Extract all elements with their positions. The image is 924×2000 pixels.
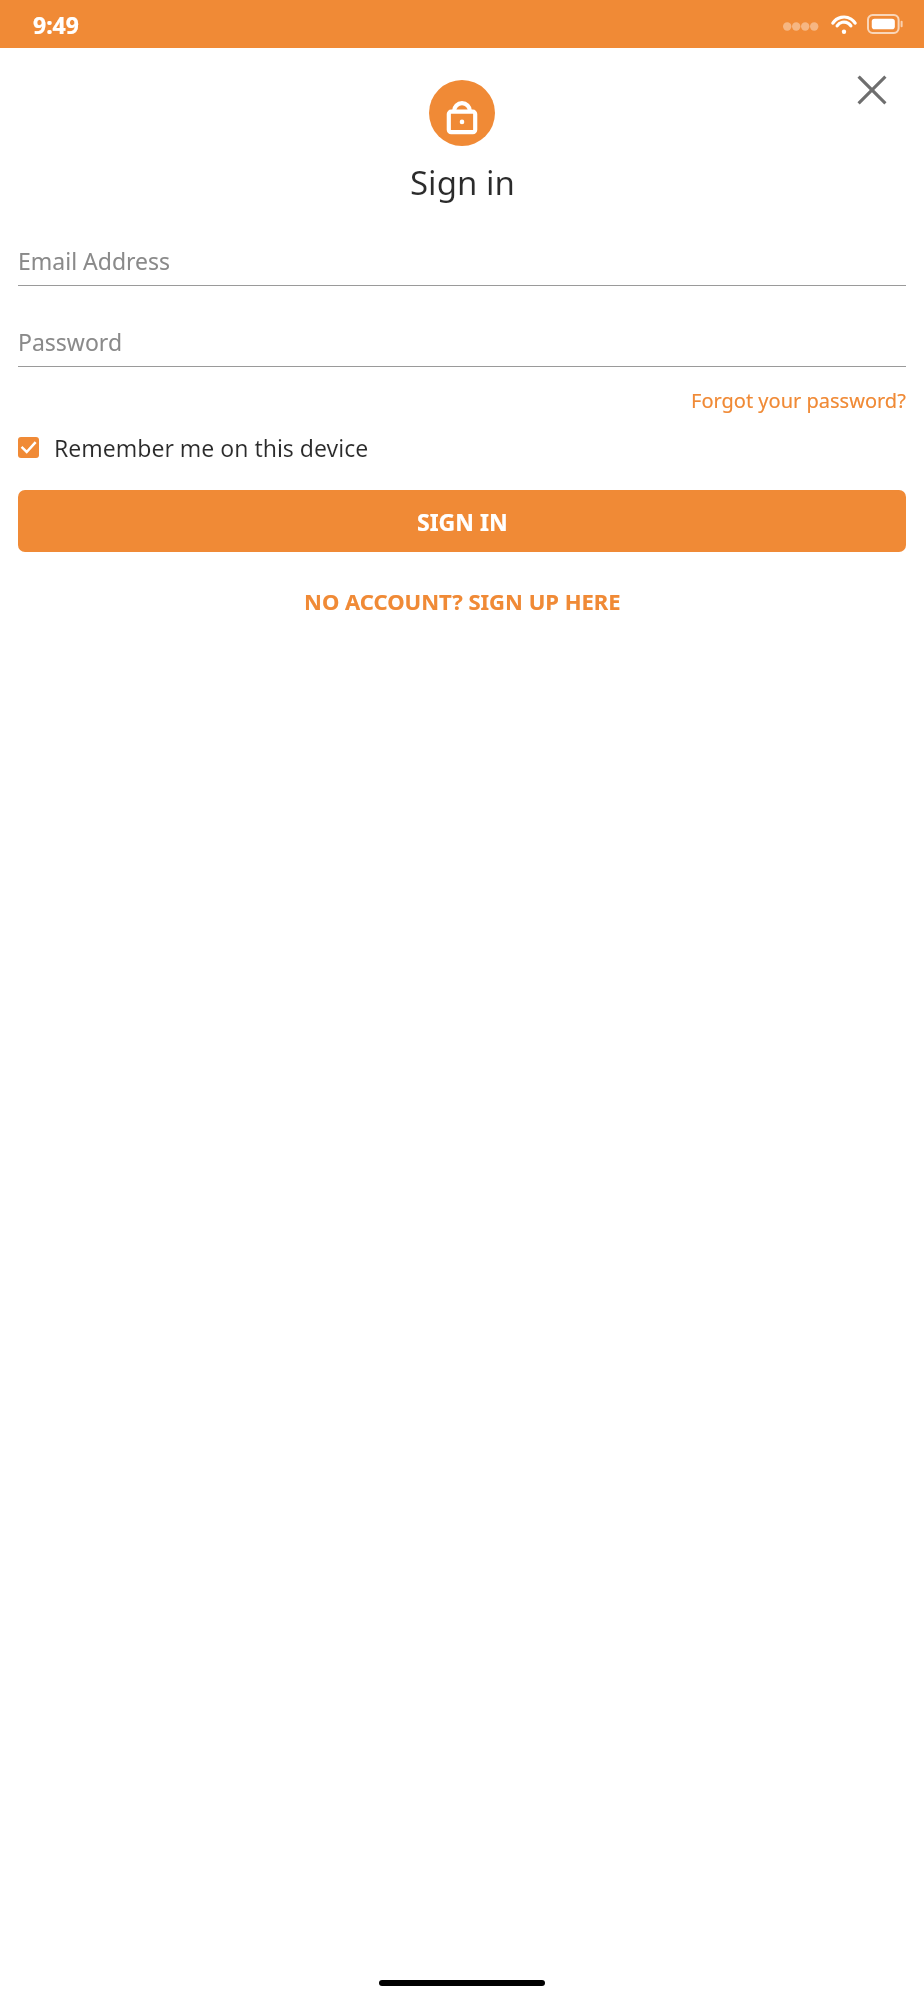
staticText: Remember me on this device bbox=[54, 432, 369, 463]
button[interactable]: NO ACCOUNT? SIGN UP HERE bbox=[296, 580, 629, 622]
staticText: NO ACCOUNT? SIGN UP HERE bbox=[304, 586, 621, 616]
button[interactable]: Remember me on this device bbox=[18, 428, 369, 467]
button[interactable]: SIGN IN bbox=[18, 490, 906, 552]
button[interactable]: Forgot your password? bbox=[691, 383, 906, 418]
staticText: Forgot your password? bbox=[691, 387, 906, 414]
staticText: Email Address bbox=[18, 245, 171, 276]
staticText: SIGN IN bbox=[417, 506, 508, 537]
staticText: Sign in bbox=[410, 160, 515, 205]
button[interactable]: Password bbox=[18, 324, 906, 358]
staticText: 9:49 bbox=[33, 9, 79, 40]
button[interactable]: Close bbox=[844, 62, 900, 118]
button[interactable]: Email Address bbox=[18, 243, 906, 277]
staticText: Password bbox=[18, 326, 123, 357]
